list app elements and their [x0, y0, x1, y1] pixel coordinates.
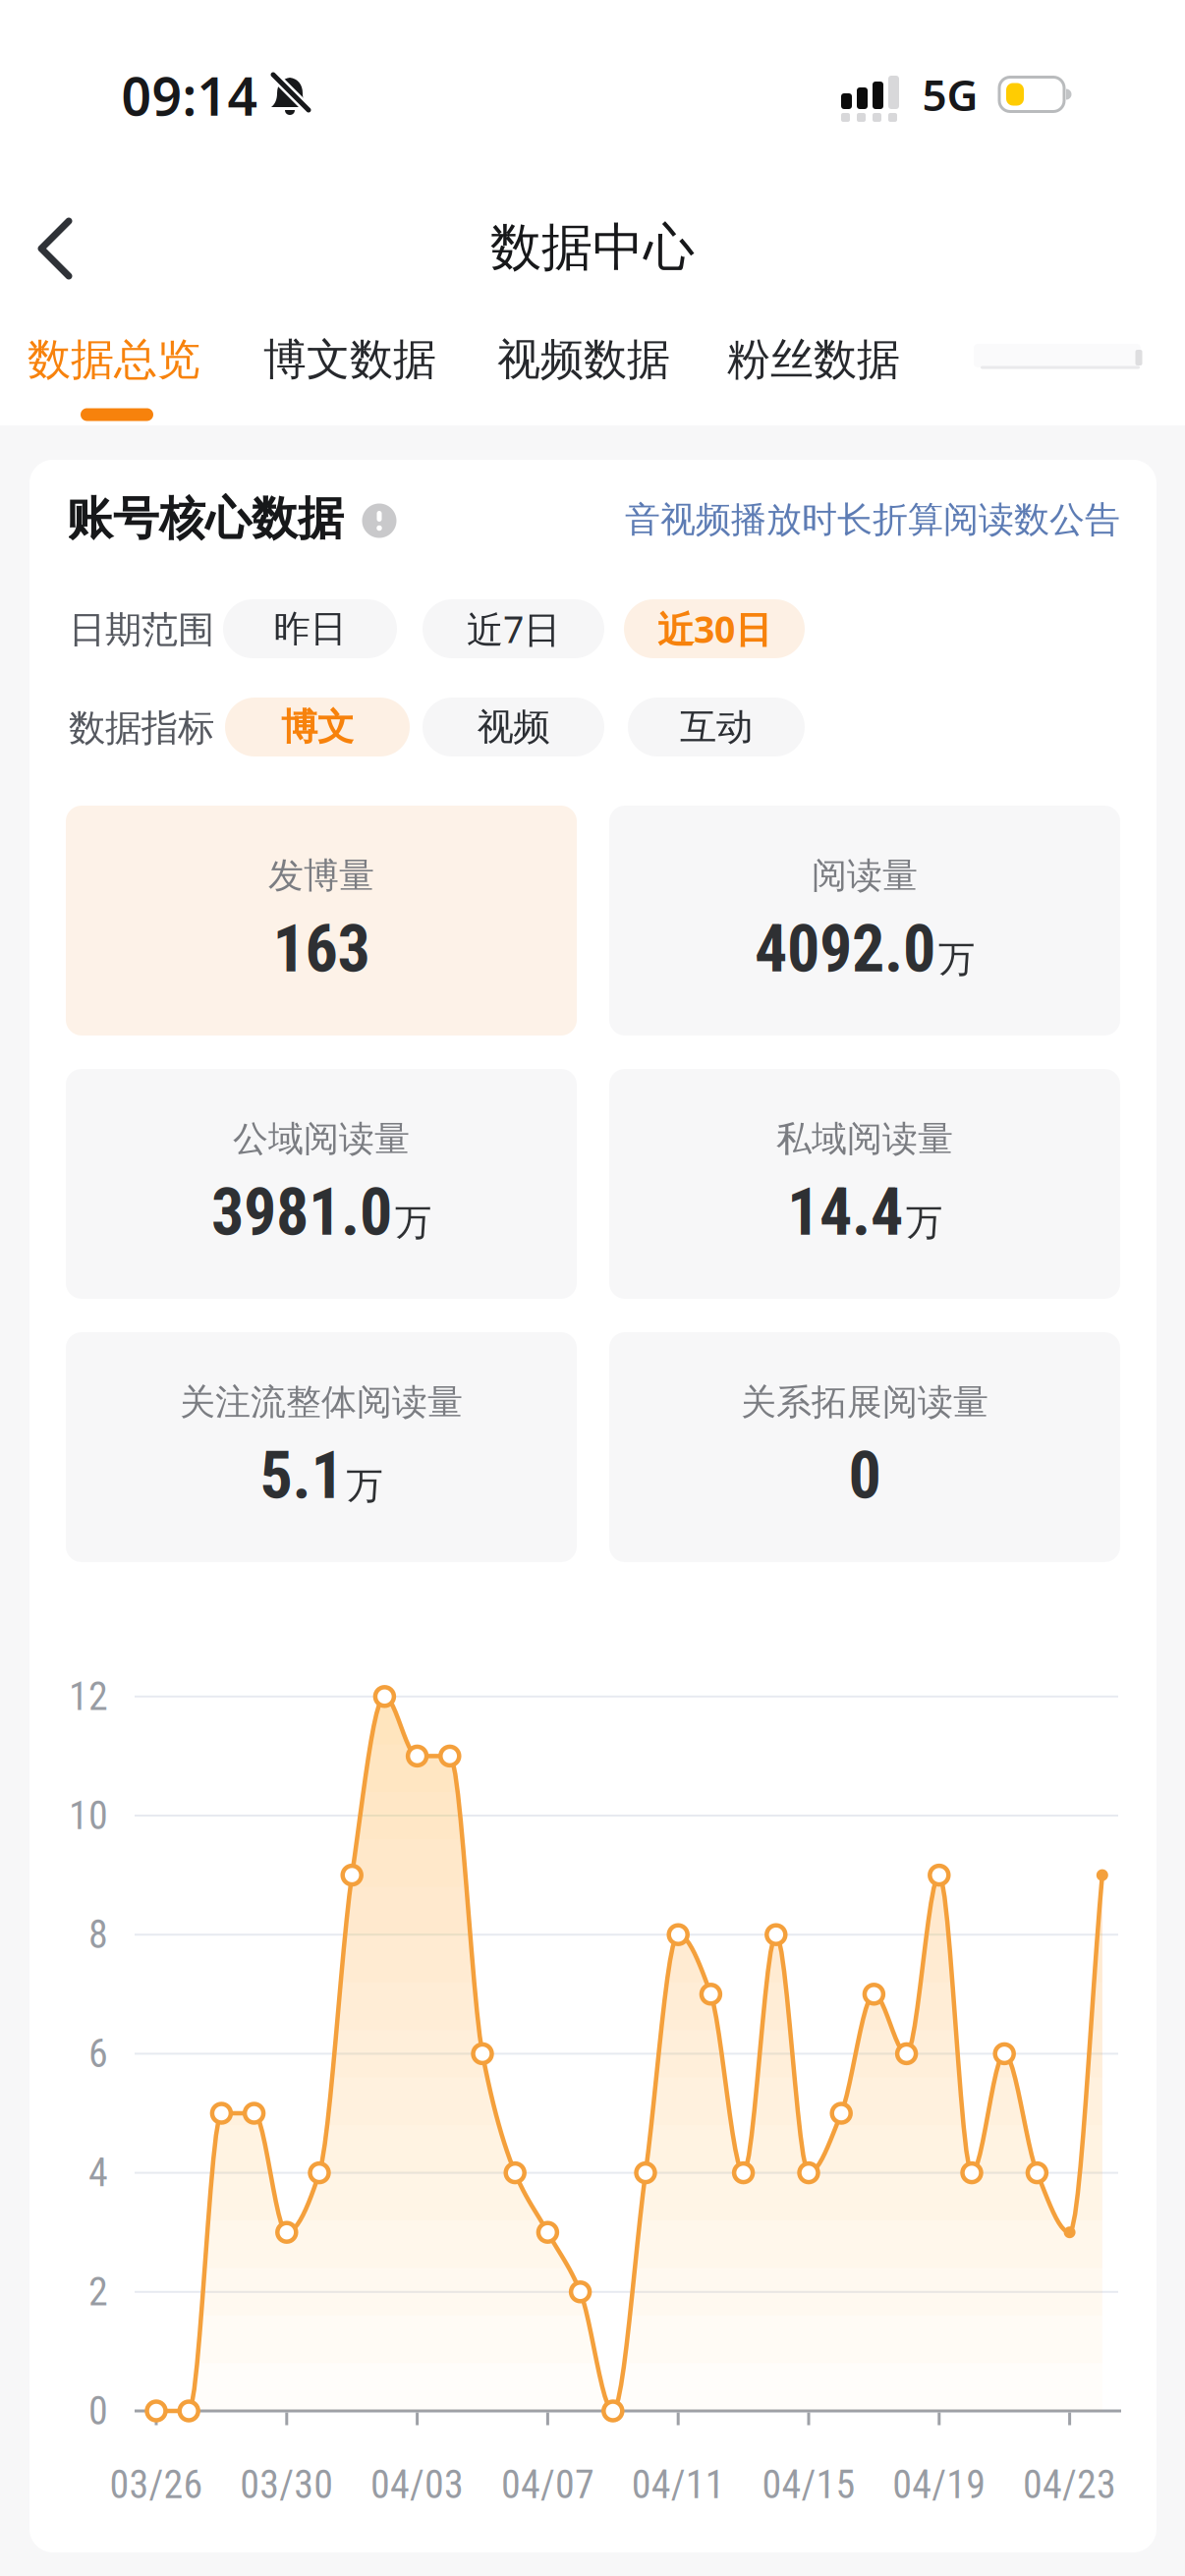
button[interactable]: 博文 [225, 698, 410, 756]
staticText: 03/26 [110, 2462, 203, 2508]
staticText: 12 [69, 1674, 108, 1720]
staticText: 2 [88, 2269, 108, 2315]
button[interactable]: Info [362, 504, 396, 538]
staticText: 04/19 [892, 2462, 986, 2508]
staticText: 04/23 [1023, 2462, 1116, 2508]
staticText: 数据中心 [490, 216, 695, 279]
staticText: 09:14 [121, 61, 258, 130]
staticText: 博文数据 [263, 333, 436, 386]
button[interactable]: 关系拓展阅读量 [609, 1332, 1120, 1562]
staticText: 04/03 [371, 2462, 464, 2508]
staticText: 视频数据 [497, 333, 670, 386]
staticText: 私域阅读量 [776, 1117, 953, 1161]
staticText: 万 [906, 1200, 942, 1245]
staticText: 163 [273, 911, 370, 987]
button[interactable]: 昨日 [223, 599, 397, 658]
staticText: 视频 [477, 705, 550, 750]
staticText: 阅读量 [812, 854, 918, 897]
staticText: 4092.0 [755, 911, 935, 987]
staticText: 10 [69, 1793, 108, 1839]
staticText: 日期范围 [69, 607, 214, 652]
button[interactable]: 阅读量 [609, 806, 1120, 1036]
button[interactable]: 近7日 [423, 599, 604, 658]
staticText: 5G [922, 66, 978, 123]
staticText: 发博量 [268, 854, 374, 897]
staticText: 数据指标 [69, 706, 214, 751]
button[interactable]: 公域阅读量 [66, 1069, 577, 1299]
staticText: 14.4 [787, 1174, 903, 1250]
staticText: 04/07 [501, 2462, 594, 2508]
staticText: 关注流整体阅读量 [180, 1381, 463, 1424]
button[interactable]: 数据总览 [28, 333, 200, 386]
staticText: 6 [88, 2031, 108, 2077]
staticText: 8 [88, 1912, 108, 1958]
staticText: 03/30 [240, 2462, 333, 2508]
staticText: 公域阅读量 [233, 1117, 410, 1161]
staticText: 粉丝数据 [727, 333, 900, 386]
staticText: 近7日 [467, 604, 560, 653]
button[interactable]: 粉丝数据 [727, 333, 900, 386]
staticText: 4 [88, 2150, 108, 2196]
button[interactable]: 视频 [423, 698, 604, 756]
button[interactable]: Back [16, 205, 96, 292]
staticText: 账号核心数据 [67, 491, 344, 547]
button[interactable]: 关注流整体阅读量 [66, 1332, 577, 1562]
button[interactable]: 私域阅读量 [609, 1069, 1120, 1299]
button[interactable]: 互动 [628, 698, 805, 756]
button[interactable]: 视频数据 [497, 333, 670, 386]
staticText: 互动 [680, 705, 753, 750]
staticText: 04/11 [632, 2462, 725, 2508]
staticText: 万 [346, 1463, 383, 1508]
staticText: 博文 [281, 705, 354, 750]
staticText: 3981.0 [211, 1174, 392, 1250]
staticText: 5.1 [260, 1438, 343, 1514]
staticText: 万 [938, 937, 975, 982]
staticText: 0 [88, 2388, 108, 2434]
staticText: 0 [848, 1438, 881, 1514]
staticText: 近30日 [657, 604, 771, 653]
button[interactable]: 音视频播放时长折算阅读数公告 [625, 498, 1120, 541]
button[interactable]: 博文数据 [263, 333, 436, 386]
staticText: 音视频播放时长折算阅读数公告 [625, 498, 1120, 541]
staticText: 关系拓展阅读量 [741, 1381, 988, 1424]
button[interactable]: 发博量 [66, 806, 577, 1036]
staticText: 昨日 [274, 606, 346, 651]
staticText: 数据总览 [28, 333, 200, 386]
staticText: 04/15 [762, 2462, 855, 2508]
button[interactable]: 近30日 [624, 599, 805, 658]
staticText: 万 [395, 1200, 431, 1245]
